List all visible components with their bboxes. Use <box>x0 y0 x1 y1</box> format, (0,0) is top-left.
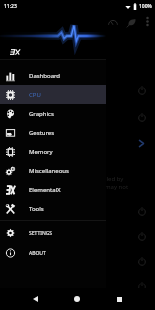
button[interactable]: Home <box>68 290 86 308</box>
staticText: ElementalX <box>29 186 61 194</box>
button[interactable]: Toggle <box>134 110 149 125</box>
button[interactable]: Toggle <box>134 254 149 269</box>
staticText: Dashboard <box>29 72 61 80</box>
staticText: Miscellaneous <box>29 167 69 175</box>
button[interactable]: Memory <box>0 142 106 161</box>
button[interactable]: Back <box>26 290 44 308</box>
button[interactable]: Miscellaneous <box>0 161 106 180</box>
button[interactable]: Toggle <box>134 204 149 219</box>
staticText: Gestures <box>29 129 55 137</box>
staticText: SETTINGS <box>29 230 53 237</box>
button[interactable]: Toggle <box>134 229 149 244</box>
button[interactable]: More options <box>140 14 154 28</box>
button[interactable]: Expand <box>134 136 149 151</box>
button[interactable]: SETTINGS <box>0 223 106 243</box>
staticText: Graphics <box>29 110 54 118</box>
staticText: Tools <box>29 205 44 213</box>
staticText: lled by <box>105 175 124 183</box>
button[interactable]: Recents <box>110 290 128 308</box>
staticText: 100% <box>139 3 152 10</box>
button[interactable]: Performance profile <box>104 14 122 32</box>
button[interactable]: Tools <box>0 199 106 218</box>
button[interactable]: Gestures <box>0 123 106 142</box>
button[interactable]: Graphics <box>0 104 106 123</box>
staticText: CPU <box>29 91 41 99</box>
button[interactable]: ElementalX <box>0 180 106 199</box>
button[interactable]: Battery profile <box>122 14 140 32</box>
staticText: Memory <box>29 148 53 156</box>
button[interactable]: Toggle <box>134 83 149 98</box>
staticText: 11:23 <box>4 3 17 10</box>
button[interactable]: ABOUT <box>0 243 106 263</box>
staticText: may not <box>105 183 129 191</box>
button[interactable]: Dashboard <box>0 66 106 85</box>
staticText: ABOUT <box>29 250 46 257</box>
button[interactable]: CPU <box>0 85 106 104</box>
